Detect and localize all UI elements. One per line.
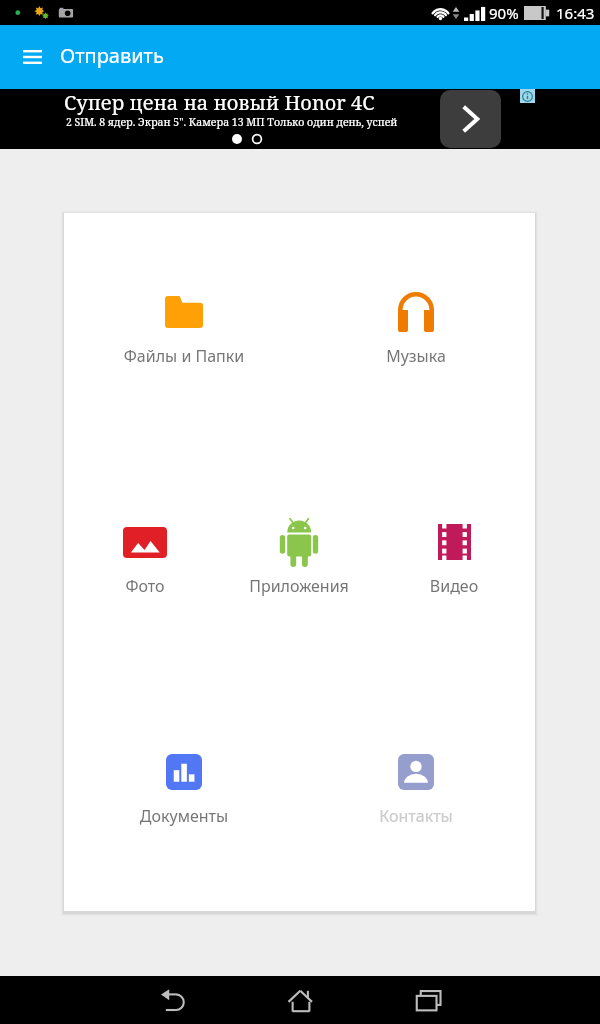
button[interactable]: Open navigation drawer [9,34,55,80]
button[interactable]: Видео [389,515,519,597]
button[interactable]: Музыка [351,285,481,367]
staticText: Музыка [351,345,481,367]
button[interactable]: Приложения [234,515,364,597]
staticText: 16:43 [556,3,595,23]
staticText: Приложения [234,575,364,597]
button[interactable]: Ad info [520,89,535,103]
staticText: Контакты [351,805,481,827]
staticText: Фото [80,575,210,597]
staticText: Файлы и Папки [119,345,249,367]
staticText: 90% [489,3,519,23]
staticText: Отправить [60,42,164,69]
staticText: Супер цена на новый Honor 4C [64,89,375,116]
staticText: 2 SIM. 8 ядер. Экран 5". Камера 13 МП То… [66,115,398,129]
button[interactable]: Recent apps [404,976,452,1024]
button[interactable]: Фото [80,515,210,597]
button[interactable]: Контакты [351,745,481,827]
button[interactable]: Файлы и Папки [119,285,249,367]
button[interactable]: Next advertisement [440,90,501,148]
button[interactable]: Home [276,976,324,1024]
staticText: Видео [389,575,519,597]
button[interactable]: Документы [119,745,249,827]
staticText: Документы [119,805,249,827]
button[interactable]: Back [148,976,196,1024]
